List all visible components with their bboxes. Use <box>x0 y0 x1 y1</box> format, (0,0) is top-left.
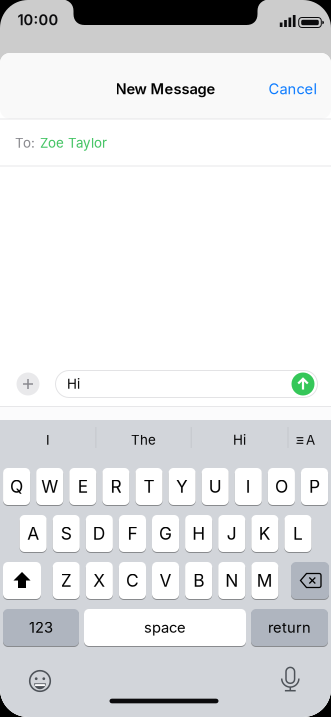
button[interactable]: M <box>251 562 278 599</box>
button[interactable]: To: <box>0 120 331 166</box>
button[interactable]: I <box>8 427 88 453</box>
button[interactable]: D <box>86 515 113 552</box>
staticText: D <box>93 523 106 544</box>
staticText: return <box>268 619 311 636</box>
staticText: S <box>61 523 72 544</box>
button[interactable]: N <box>218 562 245 599</box>
button[interactable]: P <box>301 468 328 505</box>
staticText: G <box>159 523 172 544</box>
button[interactable]: R <box>102 468 129 505</box>
staticText: V <box>160 570 172 591</box>
staticText: Q <box>10 476 23 497</box>
staticText: Hi <box>233 432 246 448</box>
button[interactable]: Message <box>55 370 318 398</box>
button[interactable]: A <box>20 515 47 552</box>
staticText: Y <box>176 476 188 497</box>
button[interactable]: return <box>251 609 328 646</box>
staticText: M <box>257 570 273 591</box>
staticText: J <box>227 523 237 544</box>
staticText: H <box>192 523 205 544</box>
button[interactable]: S <box>53 515 80 552</box>
button[interactable]: Hi <box>199 427 279 453</box>
button[interactable]: Send <box>291 372 314 395</box>
staticText: Z <box>61 570 72 591</box>
staticText: A <box>306 432 315 448</box>
button[interactable]: G <box>152 515 179 552</box>
button[interactable]: Shift <box>3 562 41 599</box>
button[interactable]: space <box>84 609 246 646</box>
button[interactable]: K <box>251 515 278 552</box>
staticText: C <box>126 570 139 591</box>
staticText: space <box>144 619 186 636</box>
button[interactable]: E <box>69 468 96 505</box>
staticText: O <box>275 476 288 497</box>
staticText: X <box>93 570 105 591</box>
staticText: A <box>27 523 39 544</box>
button[interactable]: Delete <box>292 562 328 599</box>
button[interactable]: J <box>218 515 245 552</box>
button[interactable]: L <box>284 515 311 552</box>
button[interactable]: Y <box>168 468 196 505</box>
staticText: E <box>78 476 88 497</box>
button[interactable]: W <box>36 468 63 505</box>
button[interactable]: T <box>135 468 162 505</box>
staticText: U <box>209 476 222 497</box>
staticText: W <box>41 476 58 497</box>
button[interactable]: Emoji <box>28 669 52 693</box>
button[interactable]: F <box>119 515 146 552</box>
staticText: New Message <box>115 80 215 98</box>
staticText: N <box>225 570 238 591</box>
button[interactable]: V <box>152 562 179 599</box>
staticText: Zoe Taylor <box>40 135 107 151</box>
staticText: F <box>127 523 137 544</box>
button[interactable]: X <box>86 562 113 599</box>
button[interactable]: B <box>185 562 212 599</box>
staticText: P <box>309 476 320 497</box>
staticText: R <box>110 476 121 497</box>
button[interactable]: C <box>119 562 146 599</box>
staticText: The <box>131 432 156 448</box>
staticText: 10:00 <box>17 11 58 29</box>
staticText: I <box>46 432 50 448</box>
button[interactable]: H <box>185 515 212 552</box>
button[interactable]: Cancel <box>237 74 317 104</box>
button[interactable]: 123 <box>3 609 79 646</box>
button[interactable]: Z <box>53 562 80 599</box>
button[interactable]: Apps <box>16 372 39 395</box>
staticText: Cancel <box>268 80 317 98</box>
button[interactable]: I <box>235 468 262 505</box>
button[interactable]: U <box>202 468 229 505</box>
button[interactable]: O <box>268 468 295 505</box>
staticText: B <box>193 570 204 591</box>
staticText: L <box>293 523 303 544</box>
staticText: T <box>143 476 154 497</box>
staticText: Hi <box>67 376 80 392</box>
staticText: I <box>246 476 251 497</box>
staticText: To: <box>15 135 35 151</box>
staticText: K <box>259 523 271 544</box>
staticText: 123 <box>29 619 53 636</box>
button[interactable]: The <box>103 427 183 453</box>
button[interactable]: Q <box>3 468 30 505</box>
button[interactable]: Dictation <box>276 666 304 694</box>
button[interactable]: Predictive input options <box>292 427 322 453</box>
